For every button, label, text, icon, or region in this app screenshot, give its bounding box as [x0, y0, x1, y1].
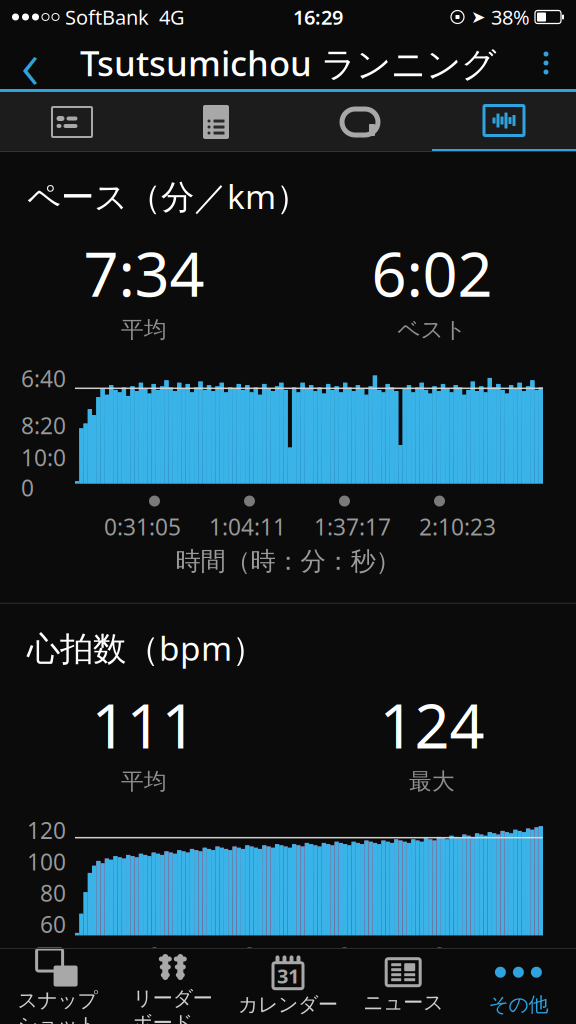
staticText: 時間（時：分：秒）	[175, 546, 400, 577]
staticText: 2:10:23	[419, 963, 496, 993]
staticText: 0:31:05	[104, 963, 181, 993]
staticText: 平均	[121, 316, 167, 343]
button[interactable]: More options	[516, 34, 576, 92]
staticText: 80	[40, 878, 66, 908]
staticText: ベスト	[397, 316, 466, 343]
staticText: リーダーボード	[133, 986, 213, 1024]
staticText: ニュース	[363, 990, 443, 1015]
staticText: ペース（分／km）	[27, 174, 309, 218]
button[interactable]: Charts	[432, 92, 576, 152]
staticText: 1:04:11	[209, 512, 286, 542]
staticText: 1:37:17	[314, 512, 391, 542]
staticText: 111	[91, 684, 196, 765]
staticText: 60	[40, 909, 66, 939]
staticText: 1:37:17	[314, 963, 391, 993]
button[interactable]: ニュース	[346, 948, 461, 1024]
staticText: 124	[379, 684, 484, 765]
staticText: 4G	[159, 4, 185, 30]
staticText: 1:04:11	[209, 963, 286, 993]
button[interactable]: Details	[144, 92, 288, 152]
staticText: 最大	[409, 767, 455, 795]
button[interactable]: Map	[0, 92, 144, 152]
staticText: その他	[488, 992, 548, 1017]
staticText: 6:02	[371, 232, 492, 314]
staticText: 120	[27, 815, 66, 845]
staticText: 38%	[491, 4, 530, 30]
button[interactable]: Back	[0, 34, 60, 92]
button[interactable]: リーダーボード	[115, 948, 230, 1024]
staticText: 平均	[121, 767, 167, 795]
staticText: ‹	[21, 17, 39, 109]
staticText: 31	[277, 962, 299, 989]
button[interactable]: 31	[230, 948, 346, 1024]
staticText: 7:34	[83, 232, 204, 314]
button[interactable]: Laps	[288, 92, 432, 152]
button[interactable]: スナップショット	[0, 948, 115, 1024]
staticText: 2:10:23	[419, 512, 496, 542]
button[interactable]: その他	[461, 948, 576, 1024]
staticText: Tsutsumichou ランニング	[80, 40, 496, 86]
staticText: 0:31:05	[104, 512, 181, 542]
staticText: ➤	[471, 7, 486, 27]
staticText: 100	[27, 847, 66, 877]
staticText: 8:20	[21, 410, 66, 441]
staticText: カレンダー	[238, 992, 338, 1017]
staticText: 16:29	[293, 4, 343, 30]
staticText: 心拍数（bpm）	[27, 626, 265, 670]
staticText: 6:40	[21, 363, 66, 394]
staticText: SoftBank	[65, 4, 149, 30]
staticText: スナップショット	[18, 988, 98, 1024]
staticText: 時間（時：分：秒）	[175, 997, 400, 1024]
staticText: 10:00	[21, 442, 66, 503]
